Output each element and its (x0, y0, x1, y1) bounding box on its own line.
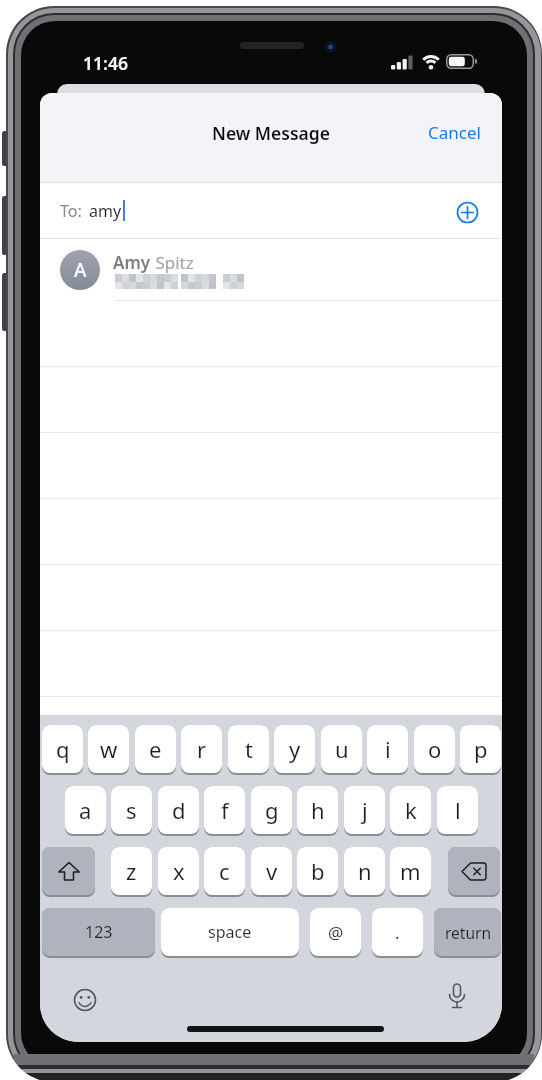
staticText: d (172, 795, 186, 825)
staticText: v (266, 856, 278, 886)
staticText: q (56, 734, 70, 764)
staticText: . (395, 921, 400, 944)
button[interactable]: q (42, 725, 83, 773)
button[interactable]: d (158, 786, 199, 834)
staticText: b (311, 856, 325, 886)
staticText: return (445, 922, 491, 943)
staticText: i (385, 734, 391, 764)
button[interactable] (448, 847, 500, 895)
staticText: y (289, 734, 301, 764)
staticText: u (335, 734, 349, 764)
button[interactable]: e (135, 725, 176, 773)
button[interactable] (40, 239, 502, 300)
staticText: 123 (85, 921, 113, 943)
staticText: 11:46 (83, 51, 128, 75)
button[interactable]: To: (40, 183, 502, 238)
staticText: w (100, 734, 118, 764)
button[interactable]: w (88, 725, 129, 773)
staticText: j (362, 795, 368, 825)
staticText: m (400, 856, 421, 886)
staticText: Spitz (151, 251, 194, 274)
button[interactable]: s (111, 786, 152, 834)
staticText: n (358, 856, 372, 886)
button[interactable]: k (390, 786, 431, 834)
staticText: A (74, 257, 87, 283)
staticText: p (474, 734, 488, 764)
button[interactable]: n (344, 847, 385, 895)
staticText: To: (60, 200, 82, 222)
staticText: o (428, 734, 442, 764)
button[interactable]: return (434, 908, 501, 956)
button[interactable]: f (204, 786, 245, 834)
button[interactable]: y (274, 725, 315, 773)
button[interactable]: h (297, 786, 338, 834)
staticText: r (197, 734, 207, 764)
button[interactable]: v (251, 847, 292, 895)
button[interactable]: Cancel (428, 121, 481, 144)
staticText: k (405, 795, 417, 825)
staticText: x (173, 856, 185, 886)
staticText: f (221, 795, 229, 825)
button[interactable] (446, 191, 488, 233)
button[interactable]: b (297, 847, 338, 895)
button[interactable] (42, 847, 95, 895)
button[interactable]: x (158, 847, 199, 895)
button[interactable]: o (414, 725, 455, 773)
button[interactable]: z (111, 847, 152, 895)
button[interactable]: r (181, 725, 222, 773)
button[interactable] (446, 983, 468, 1013)
button[interactable]: j (344, 786, 385, 834)
staticText: New Message (212, 121, 331, 145)
staticText: c (219, 856, 230, 886)
button[interactable]: g (251, 786, 292, 834)
button[interactable]: t (228, 725, 269, 773)
staticText: g (265, 795, 279, 825)
button[interactable]: . (372, 908, 423, 956)
button[interactable]: m (390, 847, 431, 895)
button[interactable]: p (460, 725, 501, 773)
staticText: e (149, 734, 162, 764)
staticText: h (311, 795, 325, 825)
button[interactable]: space (161, 908, 299, 956)
staticText: space (208, 921, 252, 943)
staticText: Cancel (428, 121, 481, 144)
button[interactable]: @ (310, 908, 361, 956)
staticText: l (455, 795, 461, 825)
button[interactable]: 123 (42, 908, 155, 956)
button[interactable]: c (204, 847, 245, 895)
button[interactable]: l (437, 786, 478, 834)
staticText: @ (328, 921, 344, 944)
staticText: t (245, 734, 253, 764)
button[interactable]: a (65, 786, 106, 834)
staticText: a (79, 795, 92, 825)
staticText: Amy (113, 251, 151, 274)
staticText: s (126, 795, 137, 825)
staticText: z (126, 856, 137, 886)
staticText: amy (89, 200, 122, 222)
button[interactable]: u (321, 725, 362, 773)
button[interactable]: i (367, 725, 408, 773)
button[interactable] (73, 988, 97, 1012)
